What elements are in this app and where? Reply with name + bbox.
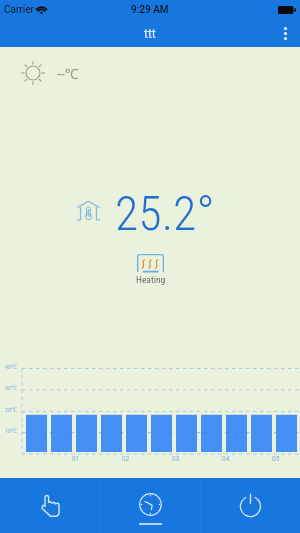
button[interactable]: Heating mode (137, 254, 164, 273)
button[interactable]: Manual (0, 478, 100, 533)
button[interactable]: More options (270, 20, 300, 47)
staticText: Carrier (4, 4, 34, 16)
staticText: 40℃ (5, 363, 17, 371)
staticText: 25.2° (115, 185, 215, 241)
staticText: 10℃ (5, 427, 17, 435)
staticText: Heating (136, 274, 166, 285)
staticText: 05 (272, 455, 280, 463)
button[interactable]: Power (200, 478, 300, 533)
button[interactable]: Schedule (100, 478, 200, 533)
staticText: 04 (222, 455, 230, 463)
staticText: 02 (122, 455, 130, 463)
staticText: ttt (144, 27, 156, 41)
staticText: 30℃ (5, 384, 17, 392)
staticText: 03 (172, 455, 180, 463)
staticText: --℃ (57, 64, 79, 83)
staticText: 01 (72, 455, 80, 463)
staticText: 9:29 AM (131, 4, 169, 16)
staticText: 20℃ (5, 406, 17, 414)
